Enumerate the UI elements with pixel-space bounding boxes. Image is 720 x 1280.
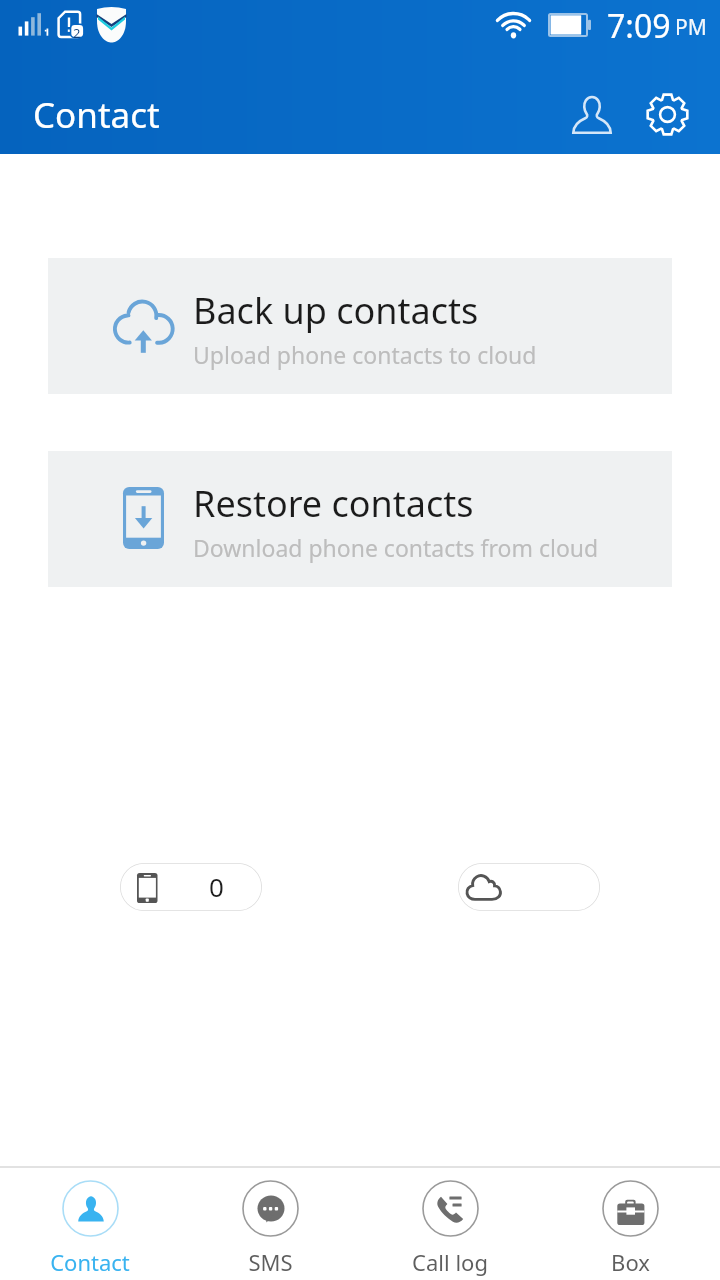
staticText: Contact — [33, 91, 160, 139]
staticText: SMS — [248, 1247, 293, 1277]
staticText: Call log — [412, 1247, 488, 1277]
button[interactable]: Phone contacts — [120, 863, 262, 911]
staticText: PM — [675, 13, 707, 42]
staticText: Download phone contacts from cloud — [193, 532, 599, 563]
button[interactable]: Contact — [0, 1168, 180, 1280]
button[interactable]: Account — [558, 80, 626, 148]
button[interactable]: Cloud contacts — [458, 863, 600, 911]
staticText: 2 — [73, 24, 81, 42]
staticText: Restore contacts — [193, 479, 474, 528]
staticText: Upload phone contacts to cloud — [193, 339, 537, 370]
button[interactable]: Settings — [633, 80, 701, 148]
staticText: Contact — [50, 1247, 130, 1277]
button[interactable]: SMS — [180, 1168, 360, 1280]
button[interactable]: Back up contacts — [48, 258, 672, 394]
button[interactable]: Restore contacts — [48, 451, 672, 587]
button[interactable]: Box — [540, 1168, 720, 1280]
button[interactable]: Call log — [360, 1168, 540, 1280]
staticText: 0 — [209, 869, 224, 904]
staticText: Box — [611, 1247, 650, 1277]
staticText: 7:09 — [607, 4, 671, 48]
staticText: Back up contacts — [193, 286, 479, 335]
